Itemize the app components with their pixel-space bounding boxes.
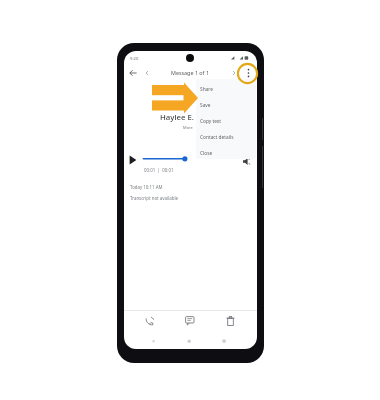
button[interactable]: Close	[196, 145, 256, 159]
button[interactable]: Play	[126, 153, 140, 167]
button[interactable]: Save	[196, 97, 256, 113]
button[interactable]: Previous message	[141, 64, 153, 81]
button[interactable]: Home	[181, 333, 197, 349]
staticText: 9:20	[130, 56, 139, 62]
button[interactable]: Send message	[169, 310, 210, 331]
button[interactable]: Recent apps	[216, 333, 232, 349]
button[interactable]: Speaker	[240, 154, 254, 168]
staticText: Haylee E.	[160, 112, 194, 123]
staticText: Copy text	[200, 118, 222, 125]
staticText: More	[183, 125, 193, 130]
button[interactable]: Haylee E.	[160, 112, 196, 130]
button[interactable]: Next message	[228, 64, 240, 81]
staticText: Contact details	[200, 134, 234, 141]
button[interactable]: Contact details	[196, 129, 256, 145]
button[interactable]: Delete	[210, 310, 251, 331]
staticText: 00:01 | 00:01	[144, 167, 174, 173]
staticText: Today 10:11 AM	[130, 184, 163, 190]
button[interactable]: Copy text	[196, 113, 256, 129]
button[interactable]: Share	[196, 81, 256, 97]
button[interactable]: Call back	[129, 310, 170, 331]
button[interactable]: More options	[241, 64, 255, 81]
button[interactable]: Back	[125, 64, 141, 81]
button[interactable]: Back	[145, 333, 161, 349]
staticText: Message 1 of 1	[171, 69, 209, 76]
staticText: Close	[200, 150, 213, 157]
staticText: Save	[200, 102, 211, 109]
staticText: Share	[200, 86, 213, 93]
staticText: Transcript not available	[130, 195, 178, 201]
